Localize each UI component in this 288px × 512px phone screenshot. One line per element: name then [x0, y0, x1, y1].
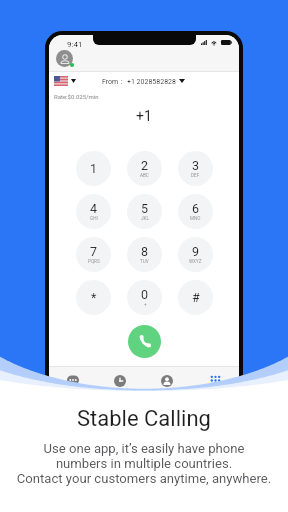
button[interactable]: Messages	[49, 367, 96, 389]
staticText: Use one app, it’s easily have phone numb…	[0, 441, 288, 486]
staticText: 9:41	[67, 40, 83, 49]
staticText: 8	[141, 244, 149, 259]
staticText: Rate:$0.025/min	[54, 93, 99, 100]
staticText: 4	[90, 201, 98, 216]
staticText: GHI	[90, 216, 98, 221]
staticText: DEF	[191, 173, 200, 178]
staticText: PQRS	[88, 259, 100, 264]
staticText: 0	[141, 287, 149, 302]
staticText: ABC	[140, 173, 149, 178]
button[interactable]: 0	[127, 280, 162, 315]
button[interactable]: 1	[76, 151, 111, 186]
button[interactable]: Recents	[96, 367, 143, 389]
staticText: 3	[192, 158, 200, 173]
button[interactable]: 8	[127, 237, 162, 272]
staticText: WXYZ	[189, 259, 202, 264]
staticText: MNO	[190, 216, 201, 221]
button[interactable]: 9	[178, 237, 213, 272]
staticText: 9	[192, 244, 200, 259]
staticText: Stable Calling	[77, 406, 211, 432]
button[interactable]: 4	[76, 194, 111, 229]
staticText: 1	[90, 161, 98, 176]
button[interactable]: Keypad	[191, 367, 239, 389]
staticText: #	[192, 290, 200, 305]
staticText: +1	[136, 108, 152, 124]
button[interactable]: Contacts	[143, 367, 191, 389]
button[interactable]: 7	[76, 237, 111, 272]
staticText: TUV	[140, 259, 149, 264]
staticText: +	[144, 302, 147, 307]
staticText: From： +1 2028582828	[102, 77, 176, 86]
button[interactable]: #	[178, 280, 213, 315]
button[interactable]: *	[76, 280, 111, 315]
button[interactable]: 2	[127, 151, 162, 186]
staticText: JKL	[141, 216, 149, 221]
button[interactable]: Call	[128, 325, 161, 358]
staticText: 6	[192, 201, 200, 216]
staticText: 7	[90, 244, 98, 259]
button[interactable]: 3	[178, 151, 213, 186]
button[interactable]: 6	[178, 194, 213, 229]
staticText: *	[91, 290, 97, 305]
button[interactable]: 5	[127, 194, 162, 229]
staticText: 2	[141, 158, 149, 173]
staticText: 5	[141, 201, 149, 216]
